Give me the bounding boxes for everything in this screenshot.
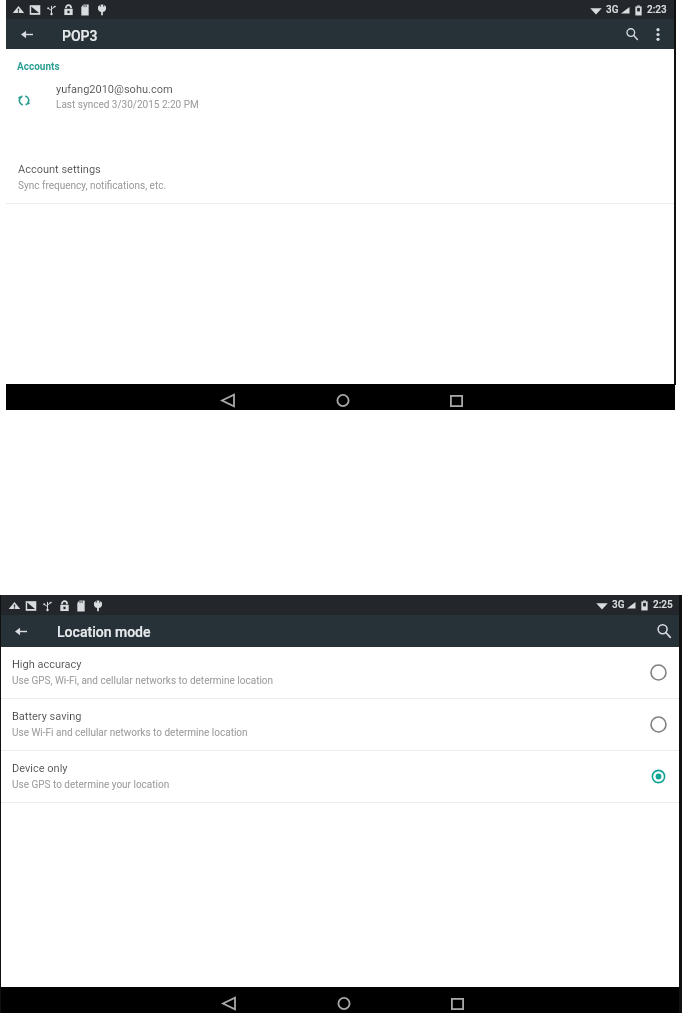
staticText: Battery saving: [12, 710, 82, 723]
button[interactable]: Recent apps: [435, 384, 479, 410]
button[interactable]: Back: [206, 384, 250, 410]
staticText: Account settings: [18, 163, 101, 176]
staticText: Sync frequency, notifications, etc.: [18, 180, 167, 192]
staticText: yufang2010@sohu.com: [56, 83, 173, 96]
staticText: POP3: [62, 28, 98, 44]
button[interactable]: Navigate up: [12, 19, 42, 49]
staticText: Last synced 3/30/2015 2:20 PM: [56, 99, 199, 111]
button[interactable]: More options: [646, 19, 670, 49]
staticText: High accuracy: [12, 658, 82, 671]
button[interactable]: Recent apps: [436, 987, 480, 1013]
staticText: 3G: [612, 599, 625, 611]
button[interactable]: Account settings: [6, 163, 675, 192]
staticText: 2:25: [653, 599, 673, 611]
button[interactable]: yufang2010@sohu.com: [6, 81, 675, 123]
staticText: Use GPS, Wi-Fi, and cellular networks to…: [12, 675, 274, 687]
staticText: Device only: [12, 762, 68, 775]
button[interactable]: Back: [207, 987, 251, 1013]
button[interactable]: Navigate up: [6, 615, 36, 647]
staticText: Use GPS to determine your location: [12, 779, 170, 791]
staticText: 2:23: [647, 4, 667, 16]
button[interactable]: Home: [321, 384, 365, 410]
button[interactable]: Device only: [1, 751, 679, 802]
button[interactable]: High accuracy: [1, 647, 679, 698]
button[interactable]: Home: [322, 987, 366, 1013]
staticText: 3G: [606, 4, 619, 16]
staticText: Location mode: [57, 624, 151, 640]
button[interactable]: Search: [649, 615, 679, 647]
button[interactable]: Battery saving: [1, 699, 679, 750]
staticText: Use Wi-Fi and cellular networks to deter…: [12, 727, 248, 739]
staticText: Accounts: [17, 61, 60, 73]
button[interactable]: Search: [617, 19, 647, 49]
